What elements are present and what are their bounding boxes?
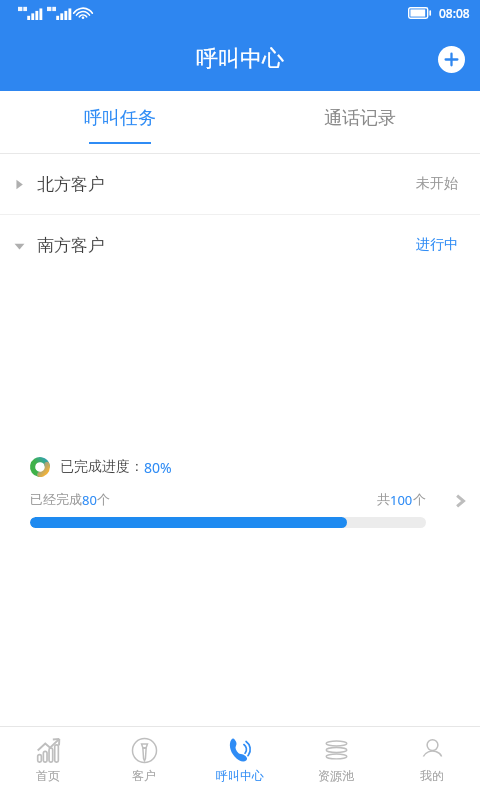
staticText: 已完成进度： xyxy=(60,458,144,476)
staticText: 资源池 xyxy=(318,768,354,783)
staticText: 未开始 xyxy=(416,175,458,193)
staticText: 80 xyxy=(82,491,97,509)
button[interactable]: 北方客户 xyxy=(0,154,480,214)
staticText: 呼叫任务 xyxy=(84,107,156,130)
staticText: 呼叫中心 xyxy=(196,45,284,73)
button[interactable]: 南方客户 xyxy=(0,215,480,275)
button[interactable]: 资源池 xyxy=(288,727,384,800)
button[interactable]: 已完成进度： xyxy=(0,275,480,726)
staticText: 个 xyxy=(413,491,426,507)
staticText: 北方客户 xyxy=(37,174,105,195)
button[interactable]: 首页 xyxy=(0,727,96,800)
staticText: 客户 xyxy=(132,768,156,783)
staticText: 南方客户 xyxy=(37,235,105,256)
staticText: 已经完成 xyxy=(30,491,82,507)
staticText: 通话记录 xyxy=(324,107,396,130)
staticText: 80% xyxy=(144,458,172,477)
button[interactable]: 新建任务 xyxy=(434,42,468,76)
button[interactable]: 我的 xyxy=(384,727,480,800)
staticText: 共 xyxy=(377,491,390,507)
staticText: 呼叫中心 xyxy=(216,768,264,783)
button[interactable]: 呼叫任务 xyxy=(0,91,240,153)
staticText: 个 xyxy=(97,491,110,507)
staticText: 100 xyxy=(390,491,413,509)
staticText: 08:08 xyxy=(439,5,470,21)
staticText: 首页 xyxy=(36,768,60,783)
button[interactable]: 客户 xyxy=(96,727,192,800)
button[interactable]: 呼叫中心 xyxy=(192,727,288,800)
staticText: 我的 xyxy=(420,768,444,783)
button[interactable]: 通话记录 xyxy=(240,91,480,153)
staticText: 进行中 xyxy=(416,236,458,254)
